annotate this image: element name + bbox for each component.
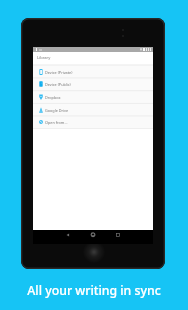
button[interactable]: Device (Public) [33,78,153,90]
staticText: All your writing in sync [0,282,188,299]
staticText: Open from... [45,120,68,125]
button[interactable]: Back [63,230,73,240]
button[interactable]: Dropbox [33,91,153,103]
staticText: Device (Public) [45,82,71,87]
staticText: Dropbox [45,95,61,100]
staticText: Device (Private) [45,70,73,75]
staticText: Library [37,55,51,61]
button[interactable]: Home [88,230,98,240]
button[interactable]: Google Drive [33,104,153,116]
button[interactable]: Device (Private) [33,66,153,78]
staticText: Google Drive [45,108,69,113]
button[interactable]: Open from... [33,116,153,128]
button[interactable]: Recents [113,230,123,240]
